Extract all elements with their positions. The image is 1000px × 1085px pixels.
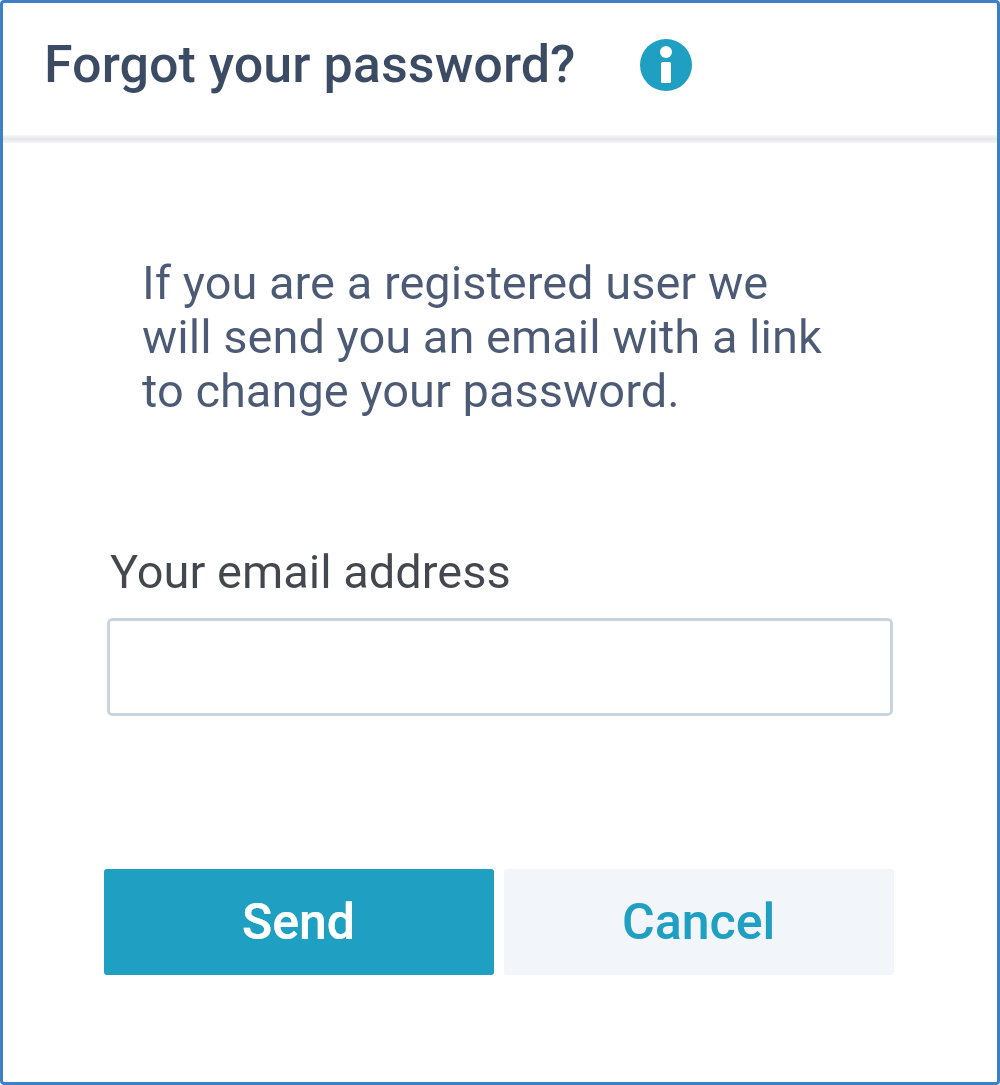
button[interactable]: Send — [104, 869, 494, 975]
button[interactable] — [107, 618, 893, 716]
staticText: Send — [242, 893, 356, 952]
button[interactable] — [640, 39, 692, 91]
button[interactable]: Cancel — [504, 869, 894, 975]
staticText: Your email address — [110, 544, 511, 599]
staticText: Cancel — [622, 893, 776, 952]
staticText: Forgot your password? — [44, 34, 576, 95]
staticText: If you are a registered user we will sen… — [142, 255, 822, 418]
